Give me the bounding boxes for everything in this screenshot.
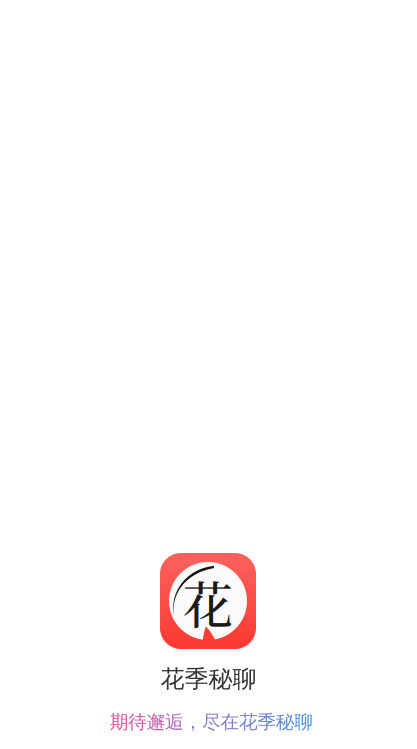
staticText: 邂 bbox=[147, 710, 166, 733]
staticText: 在 bbox=[220, 710, 239, 733]
staticText: 花季秘聊 bbox=[160, 664, 256, 694]
staticText: 花 bbox=[239, 710, 258, 733]
staticText: 季 bbox=[257, 710, 276, 733]
staticText: 花 bbox=[183, 566, 233, 638]
staticText: 逅 bbox=[165, 710, 184, 733]
staticText: ， bbox=[184, 710, 203, 733]
staticText: 期 bbox=[110, 710, 129, 733]
staticText: 尽 bbox=[202, 710, 221, 733]
staticText: 聊 bbox=[294, 710, 313, 733]
staticText: 秘 bbox=[276, 710, 295, 733]
staticText: 待 bbox=[128, 710, 147, 733]
